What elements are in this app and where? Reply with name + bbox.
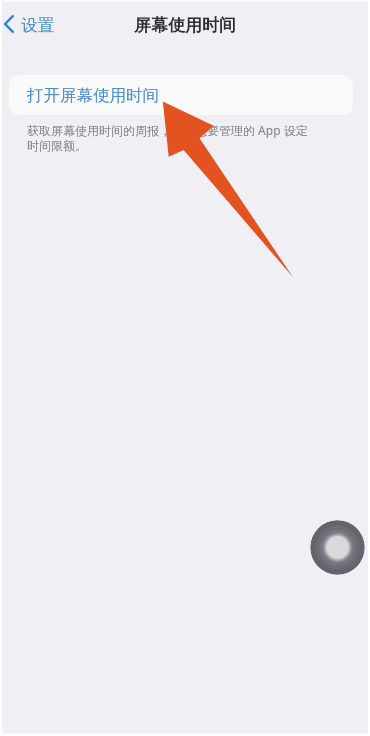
button[interactable]: 设置 [0, 8, 62, 40]
staticText: 屏幕使用时间 [134, 15, 236, 36]
button[interactable]: AssistiveTouch [310, 520, 365, 575]
staticText: 获取屏幕使用时间的周报，或为想要管理的 App 设定时间限额。 [27, 122, 315, 154]
staticText: 设置 [21, 15, 54, 36]
button[interactable]: 打开屏幕使用时间 [9, 75, 353, 115]
staticText: 打开屏幕使用时间 [27, 85, 159, 106]
